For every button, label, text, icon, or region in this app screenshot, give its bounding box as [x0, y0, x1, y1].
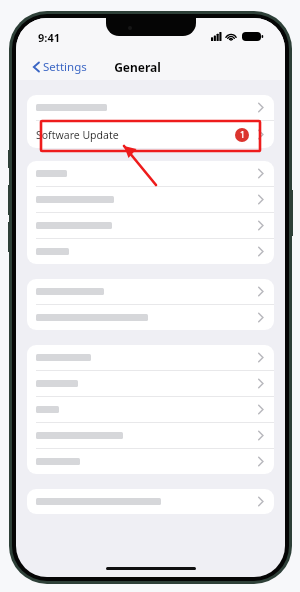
- staticText: 9:41: [38, 30, 60, 45]
- staticText: General: [114, 59, 161, 75]
- button[interactable]: [27, 187, 274, 213]
- button[interactable]: [27, 279, 274, 305]
- button[interactable]: [27, 95, 274, 121]
- button[interactable]: [27, 397, 274, 423]
- button[interactable]: [27, 449, 274, 474]
- button[interactable]: Software Update: [36, 121, 265, 148]
- button[interactable]: [27, 371, 274, 397]
- staticText: Settings: [43, 59, 87, 75]
- staticText: Software Update: [36, 128, 119, 142]
- button[interactable]: [27, 423, 274, 449]
- button[interactable]: [27, 161, 274, 187]
- button[interactable]: [27, 345, 274, 371]
- button[interactable]: Settings: [33, 59, 87, 75]
- button[interactable]: [27, 239, 274, 264]
- button[interactable]: [27, 489, 274, 514]
- staticText: 1: [240, 129, 245, 141]
- button[interactable]: [27, 213, 274, 239]
- button[interactable]: [27, 305, 274, 330]
